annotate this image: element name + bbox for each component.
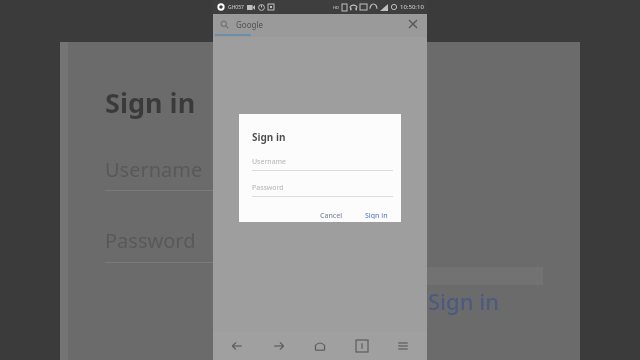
button[interactable]: Google — [236, 19, 406, 30]
staticText: Username — [105, 156, 203, 183]
staticText: Password — [252, 183, 284, 193]
staticText: GH057 — [228, 4, 244, 11]
button[interactable]: Menu — [391, 334, 415, 358]
staticText: Sign in — [105, 84, 196, 121]
button[interactable]: Close — [406, 17, 420, 31]
button[interactable]: Cancel — [315, 208, 348, 222]
button[interactable]: Tabs — [350, 334, 374, 358]
staticText: 10:50:10 — [400, 3, 424, 11]
staticText: Username — [252, 157, 287, 167]
button[interactable]: Home — [308, 334, 332, 358]
staticText: Password — [105, 227, 196, 254]
other: Search — [220, 20, 229, 29]
staticText: Sign in — [252, 130, 286, 144]
staticText: Sign in — [365, 211, 388, 219]
button[interactable]: Password — [252, 183, 393, 197]
button[interactable]: Sign in — [428, 286, 499, 316]
button[interactable]: Sign in — [360, 208, 393, 222]
button[interactable]: Forward — [267, 334, 291, 358]
button[interactable]: Back — [225, 334, 249, 358]
staticText: HD — [333, 5, 339, 10]
staticText: Cancel — [320, 211, 343, 219]
button[interactable]: Username — [252, 157, 393, 171]
